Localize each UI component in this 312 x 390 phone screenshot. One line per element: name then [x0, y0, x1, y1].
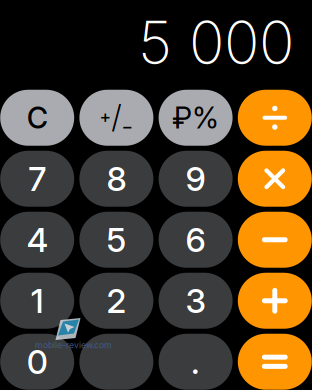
- staticText: 4: [27, 220, 48, 260]
- staticText: C: [27, 100, 48, 135]
- staticText: 5: [106, 220, 126, 260]
- button[interactable]: Minus: [238, 212, 312, 268]
- button[interactable]: [79, 334, 153, 390]
- button[interactable]: +/−: [79, 90, 153, 146]
- staticText: mobile-review.com: [35, 340, 112, 350]
- button[interactable]: Plus: [238, 273, 312, 329]
- button[interactable]: 2: [79, 273, 153, 329]
- staticText: 8: [106, 159, 126, 199]
- staticText: 5 000: [138, 7, 294, 78]
- staticText: 2: [106, 281, 126, 321]
- button[interactable]: 6: [159, 212, 233, 268]
- staticText: ₽%: [172, 100, 219, 135]
- button[interactable]: 8: [79, 151, 153, 207]
- button[interactable]: 3: [159, 273, 233, 329]
- staticText: 0: [27, 342, 48, 382]
- staticText: 9: [186, 159, 206, 199]
- staticText: +/−: [99, 99, 133, 136]
- button[interactable]: ₽%: [159, 90, 233, 146]
- button[interactable]: .: [159, 334, 233, 390]
- button[interactable]: 5: [79, 212, 153, 268]
- button[interactable]: 9: [159, 151, 233, 207]
- button[interactable]: 1: [0, 273, 74, 329]
- staticText: 3: [186, 281, 206, 321]
- staticText: 6: [186, 220, 206, 260]
- button[interactable]: Equals: [238, 334, 312, 390]
- button[interactable]: 7: [0, 151, 74, 207]
- button[interactable]: C: [0, 90, 74, 146]
- button[interactable]: 4: [0, 212, 74, 268]
- button[interactable]: Divide: [238, 90, 312, 146]
- button[interactable]: Multiply: [238, 151, 312, 207]
- staticText: 7: [28, 159, 46, 199]
- staticText: .: [191, 342, 200, 382]
- staticText: 1: [31, 281, 44, 321]
- button[interactable]: 0: [0, 334, 74, 390]
